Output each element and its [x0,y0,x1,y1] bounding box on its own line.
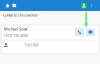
button[interactable]: Account [80,0,88,11]
staticText: (317) 730-3686 [4,33,28,38]
button[interactable]: Apps [11,0,18,11]
button[interactable]: Home [4,0,11,11]
staticText: 1161768 [24,42,38,48]
button[interactable]: Call [75,28,84,36]
button[interactable]: Message [86,28,95,36]
button[interactable]: More [88,0,95,11]
staticText: Contacts Discovered [3,12,37,18]
staticText: Michael Scott [4,26,27,32]
